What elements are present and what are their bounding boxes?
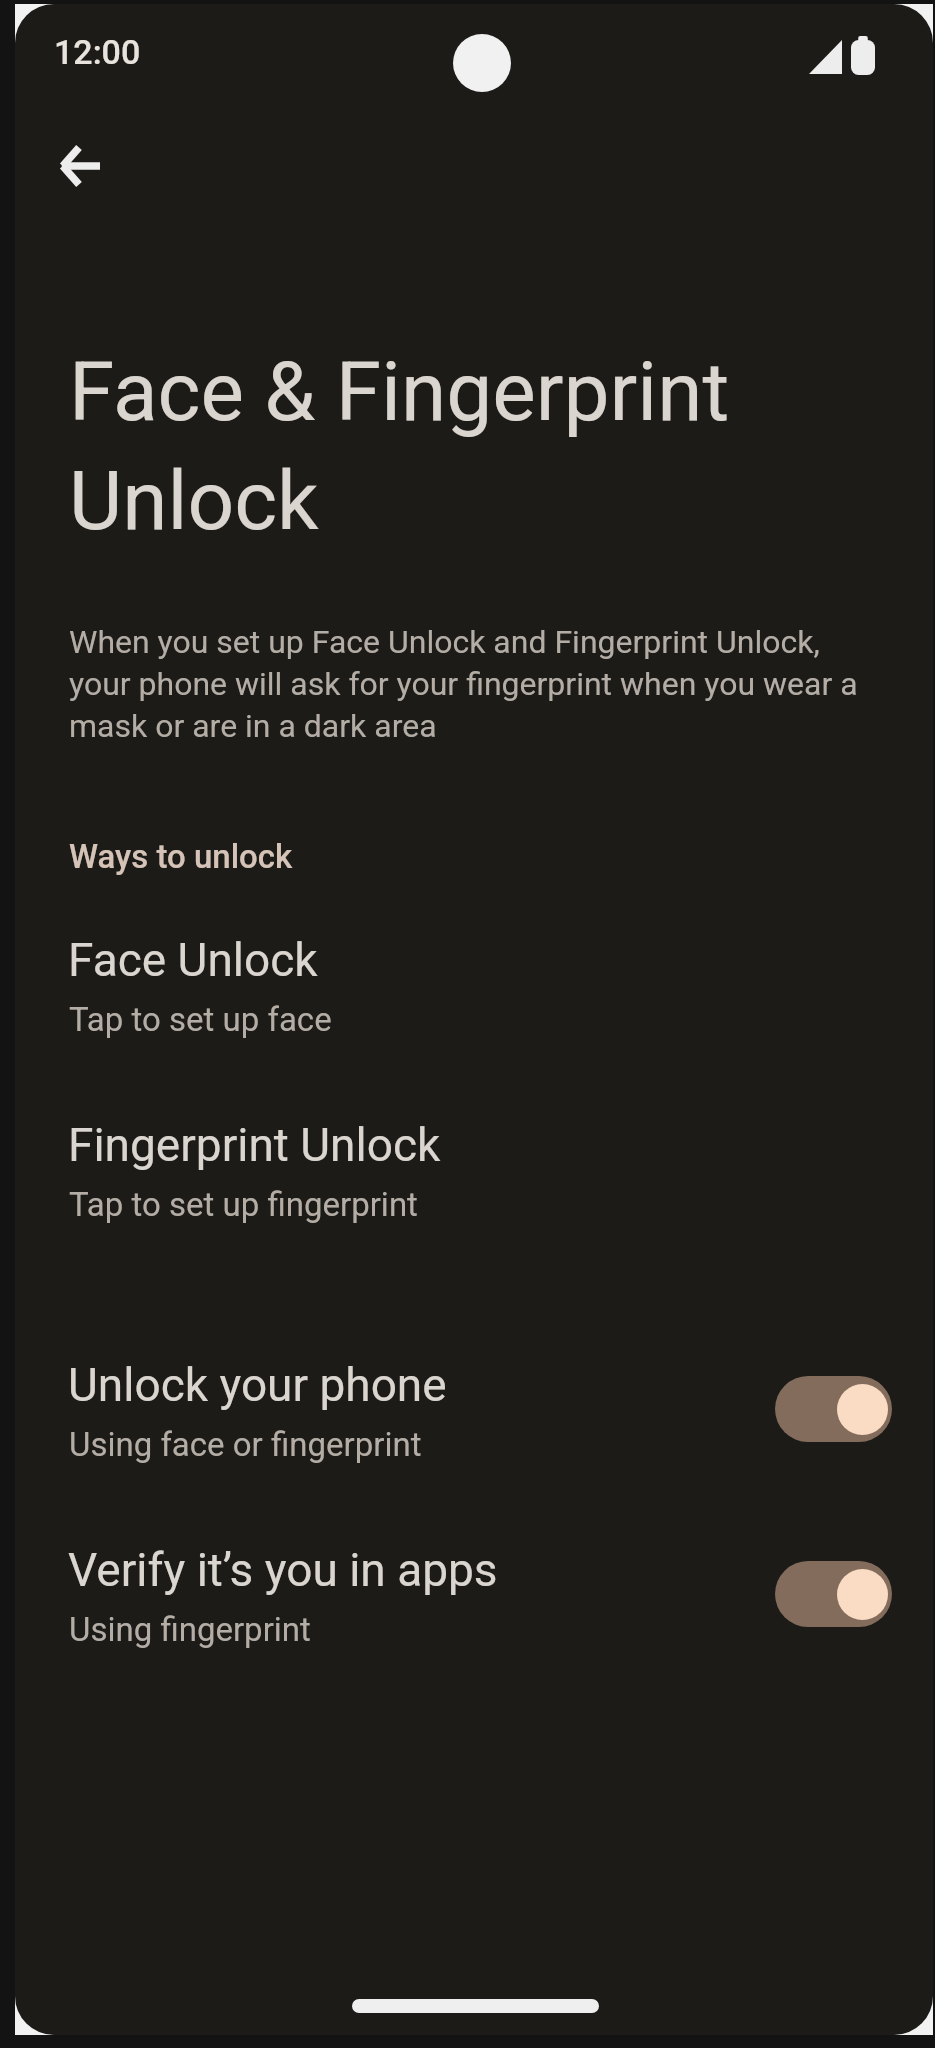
staticText: Verify it’s you in apps <box>68 1543 498 1597</box>
staticText: When you set up Face Unlock and Fingerpr… <box>69 620 879 746</box>
button[interactable]: Fingerprint Unlock <box>15 1106 933 1238</box>
staticText: Face & Fingerprint Unlock <box>69 334 809 552</box>
button[interactable]: Back <box>35 122 123 210</box>
staticText: Face Unlock <box>68 933 318 987</box>
staticText: Fingerprint Unlock <box>68 1118 441 1172</box>
button[interactable]: Face Unlock <box>15 921 933 1053</box>
staticText: Tap to set up fingerprint <box>69 1185 418 1224</box>
button[interactable]: Verify it’s you in apps <box>15 1531 933 1663</box>
staticText: Using face or fingerprint <box>69 1425 422 1464</box>
staticText: Using fingerprint <box>69 1610 311 1649</box>
button[interactable]: Unlock your phone <box>15 1346 933 1478</box>
staticText: 12:00 <box>54 32 141 72</box>
staticText: Ways to unlock <box>69 837 293 876</box>
staticText: Unlock your phone <box>68 1358 447 1412</box>
button[interactable]: Toggle Verify it’s you in apps <box>775 1561 892 1627</box>
staticText: Tap to set up face <box>69 1000 332 1039</box>
button[interactable]: Toggle Unlock your phone <box>775 1376 892 1442</box>
